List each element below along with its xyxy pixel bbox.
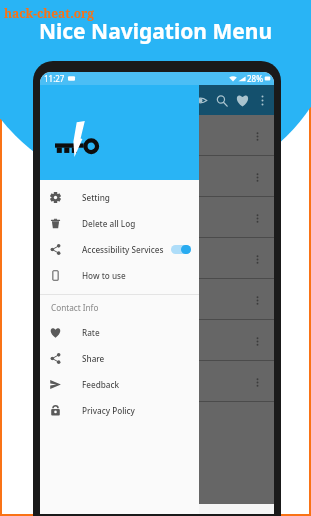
button[interactable]: Item options	[40, 279, 274, 320]
button[interactable]: Rate	[40, 319, 199, 345]
button[interactable]: Item options	[250, 170, 264, 184]
staticText: Delete all Log	[82, 218, 136, 229]
staticText: Contact Info	[51, 302, 99, 313]
button[interactable]: More options	[253, 91, 271, 109]
staticText: Setting	[82, 192, 110, 203]
button[interactable]: Item options	[40, 320, 274, 361]
button[interactable]: Item options	[40, 156, 274, 197]
staticText: Rate	[82, 327, 100, 338]
button[interactable]: Item options	[40, 361, 274, 402]
button[interactable]: Search	[211, 90, 232, 111]
button[interactable]: How to use	[40, 262, 199, 288]
button[interactable]: Favorites	[232, 90, 253, 111]
button[interactable]: Setting	[40, 184, 199, 210]
button[interactable]: Item options	[40, 115, 274, 156]
staticText: Share	[82, 353, 105, 364]
button[interactable]: Privacy Policy	[40, 397, 199, 423]
button[interactable]: Delete all Log	[40, 210, 199, 236]
staticText: Accessibility Services	[82, 244, 164, 255]
staticText: Nice Navigation Menu	[2, 17, 309, 46]
button[interactable]: Item options	[250, 293, 264, 307]
staticText: 11:27	[44, 73, 65, 84]
button[interactable]: Item options	[40, 197, 274, 238]
staticText: hack-cheat.org	[4, 5, 95, 21]
staticText: 28%	[247, 73, 263, 84]
button[interactable]: Item options	[250, 129, 264, 143]
button[interactable]: Item options	[250, 334, 264, 348]
staticText: How to use	[82, 270, 126, 281]
button[interactable]: Item options	[250, 252, 264, 266]
button[interactable]: Share	[40, 345, 199, 371]
button[interactable]: Accessibility Services	[40, 236, 199, 262]
button[interactable]: Item options	[250, 375, 264, 389]
staticText: Feedback	[82, 379, 120, 390]
button[interactable]: Feedback	[40, 371, 199, 397]
button[interactable]: Item options	[40, 238, 274, 279]
button[interactable]: Item options	[250, 211, 264, 225]
staticText: Privacy Policy	[82, 405, 135, 416]
button[interactable]: Preview	[190, 90, 211, 111]
